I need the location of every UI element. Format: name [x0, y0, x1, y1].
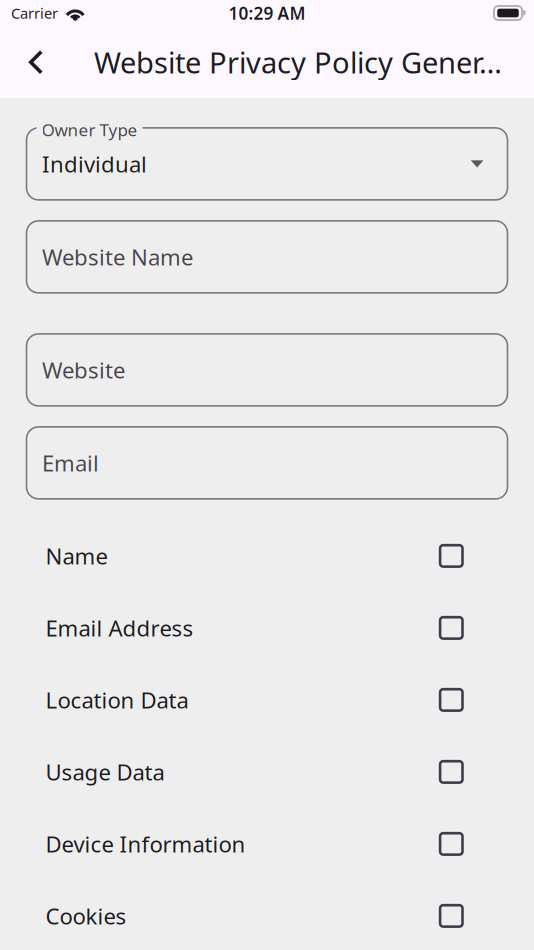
- button[interactable]: Device Information: [26, 808, 507, 880]
- button[interactable]: Cookies: [26, 880, 507, 950]
- staticText: Device Information: [45, 829, 245, 859]
- staticText: Website Privacy Policy Gener…: [94, 42, 502, 82]
- staticText: Individual: [42, 149, 147, 179]
- staticText: 10:29 AM: [228, 1, 305, 25]
- staticText: Usage Data: [45, 757, 164, 787]
- staticText: Email: [42, 448, 99, 478]
- button[interactable]: Usage Data: [26, 736, 507, 808]
- button[interactable]: Website Name: [26, 221, 507, 293]
- button[interactable]: Email Address: [26, 592, 507, 664]
- staticText: Email Address: [45, 613, 193, 643]
- button[interactable]: Location Data: [26, 664, 507, 736]
- button[interactable]: Back: [7, 31, 65, 93]
- staticText: Location Data: [45, 685, 188, 715]
- staticText: Owner Type: [41, 118, 137, 141]
- staticText: Website: [42, 355, 125, 385]
- button[interactable]: Individual: [26, 128, 507, 200]
- button[interactable]: Email: [26, 427, 507, 499]
- staticText: Cookies: [45, 901, 126, 931]
- staticText: Carrier: [11, 3, 58, 23]
- button[interactable]: Name: [26, 520, 507, 592]
- staticText: Name: [45, 541, 107, 571]
- staticText: Website Name: [42, 242, 193, 272]
- button[interactable]: Website: [26, 334, 507, 406]
